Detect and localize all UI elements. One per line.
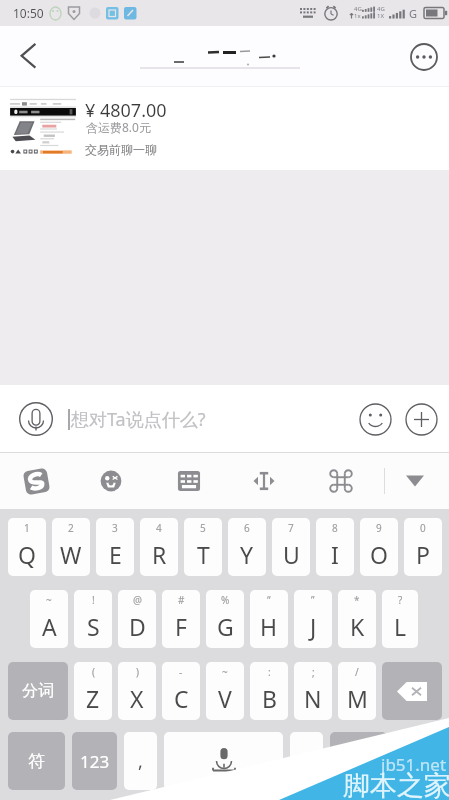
staticText: N bbox=[304, 683, 322, 714]
button[interactable]: Hide keyboard bbox=[392, 453, 437, 509]
staticText: K bbox=[350, 611, 365, 642]
staticText: , bbox=[138, 749, 143, 774]
staticText: “ bbox=[267, 593, 271, 607]
button[interactable]: Enter bbox=[330, 732, 387, 790]
button[interactable]: 符 bbox=[8, 732, 65, 790]
button[interactable]: Emoji bbox=[88, 453, 133, 509]
button[interactable]: ; bbox=[294, 662, 332, 720]
staticText: 6 bbox=[244, 521, 250, 535]
button[interactable]: Settings bbox=[318, 453, 363, 509]
staticText: M bbox=[347, 683, 368, 714]
staticText: 2 bbox=[68, 521, 74, 535]
staticText: 4G bbox=[377, 5, 385, 13]
staticText: G bbox=[409, 6, 418, 21]
staticText: jb51.net bbox=[381, 753, 447, 776]
button[interactable]: ¥ 4807.00 bbox=[0, 87, 449, 170]
button[interactable]: 分词 bbox=[8, 662, 68, 720]
button[interactable]: Space bbox=[164, 732, 283, 790]
staticText: 1x bbox=[354, 12, 361, 20]
button[interactable]: * bbox=[338, 590, 376, 648]
staticText: * bbox=[354, 593, 360, 607]
button[interactable]: ” bbox=[294, 590, 332, 648]
staticText: I bbox=[331, 539, 339, 570]
staticText: 0 bbox=[420, 521, 426, 535]
button[interactable]: Add attachment bbox=[398, 396, 444, 442]
staticText: F bbox=[175, 611, 187, 642]
button[interactable]: / bbox=[338, 662, 376, 720]
staticText: 5 bbox=[200, 521, 206, 535]
button[interactable]: ! bbox=[74, 590, 112, 648]
button[interactable]: @ bbox=[118, 590, 156, 648]
button[interactable]: 6 bbox=[228, 518, 266, 576]
button[interactable]: “ bbox=[250, 590, 288, 648]
staticText: G bbox=[217, 611, 234, 642]
staticText: @ bbox=[133, 593, 142, 607]
staticText: L bbox=[394, 611, 407, 642]
button[interactable]: % bbox=[206, 590, 244, 648]
staticText: 分词 bbox=[22, 681, 54, 701]
button[interactable]: 。 bbox=[290, 732, 323, 790]
button[interactable]: ( bbox=[74, 662, 112, 720]
button[interactable]: ? bbox=[382, 590, 418, 648]
staticText: ~ bbox=[222, 665, 228, 679]
staticText: U bbox=[283, 539, 300, 570]
button[interactable]: Emoji bbox=[352, 396, 398, 442]
staticText: : bbox=[268, 665, 271, 679]
staticText: 123 bbox=[80, 750, 110, 773]
staticText: ” bbox=[311, 593, 315, 607]
button[interactable]: 1 bbox=[8, 518, 46, 576]
staticText: 4G bbox=[354, 5, 362, 13]
staticText: Q bbox=[18, 539, 36, 570]
staticText: Z bbox=[86, 683, 100, 714]
staticText: A bbox=[42, 611, 57, 642]
staticText: 符 bbox=[28, 751, 45, 772]
button[interactable]: 8 bbox=[316, 518, 354, 576]
staticText: ¥ 4807.00 bbox=[85, 98, 167, 123]
button[interactable]: 0 bbox=[404, 518, 442, 576]
staticText: # bbox=[178, 593, 185, 607]
button[interactable]: Back bbox=[0, 29, 56, 85]
staticText: D bbox=[129, 611, 146, 642]
staticText: X bbox=[130, 683, 144, 714]
staticText: 1 bbox=[24, 521, 30, 535]
button[interactable]: 7 bbox=[272, 518, 310, 576]
button[interactable]: Move cursor bbox=[241, 453, 286, 509]
button[interactable]: - bbox=[162, 662, 200, 720]
staticText: ~ bbox=[46, 593, 52, 607]
button[interactable]: Keyboard layout bbox=[166, 453, 211, 509]
staticText: % bbox=[221, 593, 230, 607]
staticText: 1X bbox=[377, 12, 384, 20]
staticText: V bbox=[218, 683, 232, 714]
button[interactable]: : bbox=[250, 662, 288, 720]
staticText: T bbox=[197, 539, 210, 570]
staticText: R bbox=[152, 539, 167, 570]
staticText: ; bbox=[312, 665, 315, 679]
staticText: ( bbox=[92, 665, 95, 679]
staticText: P bbox=[416, 539, 430, 570]
staticText: / bbox=[355, 665, 359, 679]
staticText: H bbox=[260, 611, 278, 642]
button[interactable]: Backspace bbox=[382, 662, 442, 720]
staticText: B bbox=[262, 683, 277, 714]
button[interactable]: ~ bbox=[30, 590, 68, 648]
button[interactable]: 9 bbox=[360, 518, 398, 576]
button[interactable]: Sogou input bbox=[14, 453, 59, 509]
button[interactable]: 123 bbox=[72, 732, 117, 790]
button[interactable]: , bbox=[124, 732, 157, 790]
button[interactable]: ~ bbox=[206, 662, 244, 720]
button[interactable]: 5 bbox=[184, 518, 222, 576]
staticText: ) bbox=[136, 665, 139, 679]
staticText: 想对Ta说点什么? bbox=[71, 407, 206, 432]
button[interactable]: More options bbox=[402, 35, 446, 79]
button[interactable]: Voice input bbox=[13, 396, 59, 442]
button[interactable]: ) bbox=[118, 662, 156, 720]
button[interactable]: 3 bbox=[96, 518, 134, 576]
staticText: 交易前聊一聊 bbox=[85, 142, 157, 157]
staticText: ! bbox=[92, 593, 95, 607]
button[interactable]: 2 bbox=[52, 518, 90, 576]
staticText: 3 bbox=[112, 521, 118, 535]
button[interactable]: # bbox=[162, 590, 200, 648]
staticText: 10:50 bbox=[13, 5, 44, 21]
button[interactable]: 4 bbox=[140, 518, 178, 576]
